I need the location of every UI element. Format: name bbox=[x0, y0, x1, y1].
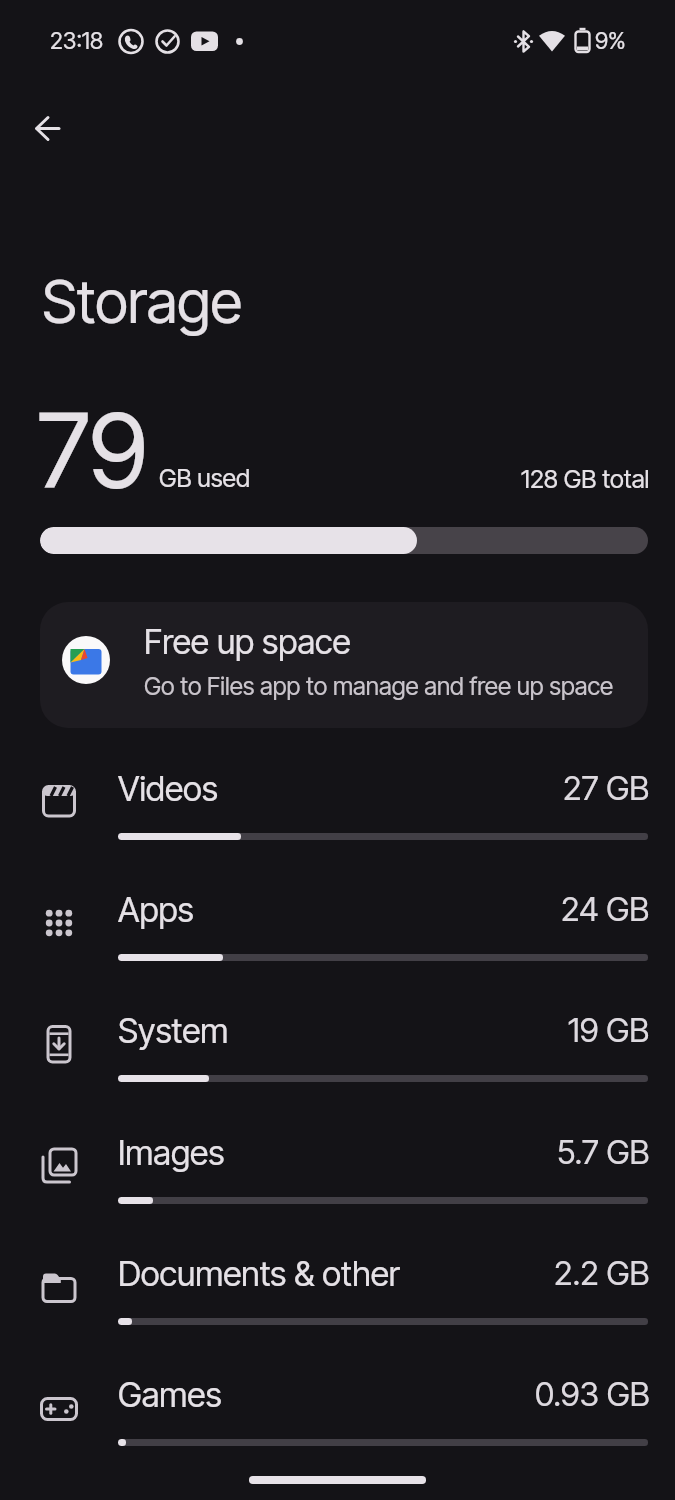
button[interactable]: System bbox=[0, 992, 675, 1113]
staticText: Go to Files app to manage and free up sp… bbox=[144, 671, 614, 701]
staticText: 2.2 GB bbox=[554, 1253, 650, 1293]
staticText: 128 GB total bbox=[521, 464, 650, 494]
staticText: Apps bbox=[118, 889, 194, 930]
staticText: GB used bbox=[159, 463, 250, 493]
button[interactable]: Documents & other bbox=[0, 1235, 675, 1356]
staticText: Storage bbox=[42, 266, 243, 337]
staticText: 24 GB bbox=[561, 889, 650, 929]
staticText: 5.7 GB bbox=[557, 1132, 650, 1172]
staticText: Games bbox=[118, 1374, 222, 1415]
staticText: 0.93 GB bbox=[535, 1374, 650, 1414]
button[interactable]: Games bbox=[0, 1356, 675, 1477]
staticText: 9% bbox=[595, 27, 626, 55]
button[interactable]: Apps bbox=[0, 871, 675, 992]
staticText: Videos bbox=[118, 768, 218, 809]
button[interactable]: Images bbox=[0, 1114, 675, 1235]
button[interactable]: Free up space bbox=[40, 602, 648, 728]
staticText: System bbox=[118, 1010, 229, 1051]
staticText: Documents & other bbox=[118, 1253, 400, 1294]
staticText: 19 GB bbox=[568, 1010, 650, 1050]
staticText: 79 bbox=[37, 388, 148, 513]
staticText: Images bbox=[118, 1132, 225, 1173]
staticText: 27 GB bbox=[563, 768, 650, 808]
staticText: 23:18 bbox=[50, 27, 104, 55]
button[interactable]: Videos bbox=[0, 750, 675, 871]
button[interactable] bbox=[23, 105, 71, 153]
staticText: Free up space bbox=[144, 621, 351, 662]
